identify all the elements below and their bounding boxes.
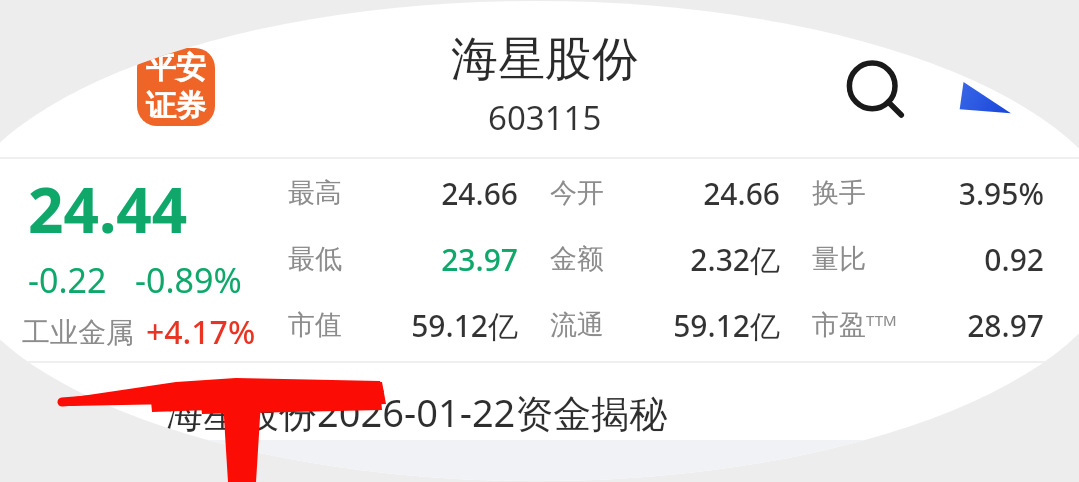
staticText: 证券 <box>146 87 206 125</box>
staticText: 24.66 <box>670 173 780 214</box>
staticText: +4.17% <box>146 310 256 354</box>
button[interactable]: 最高 <box>288 160 1079 360</box>
staticText: 603115 <box>488 95 602 140</box>
staticText: 换手 <box>812 176 866 210</box>
staticText: 24.66 <box>408 173 518 214</box>
staticText: 23.97 <box>408 239 518 280</box>
staticText: 海星股份2026-01-22资金揭秘 <box>165 386 668 438</box>
staticText: 流通 <box>550 308 604 342</box>
staticText: -0.89% <box>135 257 242 303</box>
staticText: 平安 <box>146 49 206 87</box>
staticText: 最低 <box>288 242 342 276</box>
button[interactable]: 海星股份 <box>330 30 760 140</box>
staticText: 3.95% <box>922 173 1044 214</box>
staticText: 28.97 <box>922 305 1044 346</box>
staticText: 金额 <box>550 242 604 276</box>
staticText: 市盈TTM <box>812 308 897 342</box>
staticText: 2.32亿 <box>670 239 780 280</box>
button[interactable]: 海星股份2026-01-22资金揭秘 <box>165 382 725 442</box>
staticText: 24.44 <box>28 167 188 251</box>
button[interactable]: 24.44 <box>0 160 288 360</box>
staticText: 海星股份 <box>451 30 639 89</box>
staticText: 0.92 <box>922 239 1044 280</box>
staticText: 59.12亿 <box>670 305 780 346</box>
staticText: 今开 <box>550 176 604 210</box>
staticText: 工业金属 <box>22 315 134 350</box>
button[interactable]: Search <box>838 54 914 130</box>
staticText: -0.22 <box>28 257 107 303</box>
staticText: 最高 <box>288 176 342 210</box>
staticText: 市值 <box>288 308 342 342</box>
button[interactable]: 平安证券 <box>137 48 215 126</box>
staticText: 量比 <box>812 242 866 276</box>
staticText: 59.12亿 <box>408 305 518 346</box>
